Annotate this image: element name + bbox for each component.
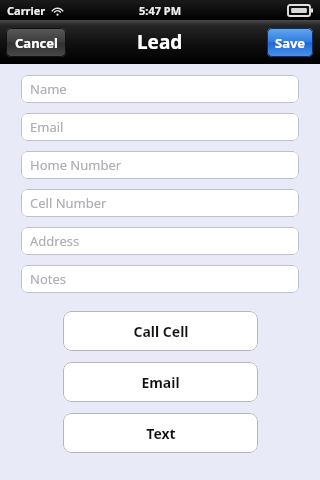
staticText: Home Number xyxy=(30,156,122,174)
staticText: Call Cell xyxy=(133,322,189,341)
button[interactable]: Name xyxy=(21,75,299,103)
button[interactable]: Cancel xyxy=(6,28,66,57)
button[interactable]: Call Cell xyxy=(63,311,258,351)
staticText: Lead xyxy=(137,29,183,55)
button[interactable]: Text xyxy=(63,413,258,453)
button[interactable]: Save xyxy=(267,28,313,57)
staticText: Email xyxy=(30,118,64,136)
staticText: Cell Number xyxy=(30,194,107,212)
staticText: 5:47 PM xyxy=(139,3,182,18)
staticText: Carrier xyxy=(7,3,46,18)
staticText: Save xyxy=(275,34,306,52)
button[interactable]: Email xyxy=(21,113,299,141)
button[interactable]: Cell Number xyxy=(21,189,299,217)
staticText: Text xyxy=(146,424,176,443)
button[interactable]: Address xyxy=(21,227,299,255)
staticText: Email xyxy=(141,373,180,392)
staticText: Address xyxy=(30,232,80,250)
staticText: Name xyxy=(30,80,67,98)
staticText: Cancel xyxy=(15,34,58,52)
button[interactable]: Email xyxy=(63,362,258,402)
button[interactable]: Notes xyxy=(21,265,299,293)
button[interactable]: Home Number xyxy=(21,151,299,179)
staticText: Notes xyxy=(30,270,66,288)
